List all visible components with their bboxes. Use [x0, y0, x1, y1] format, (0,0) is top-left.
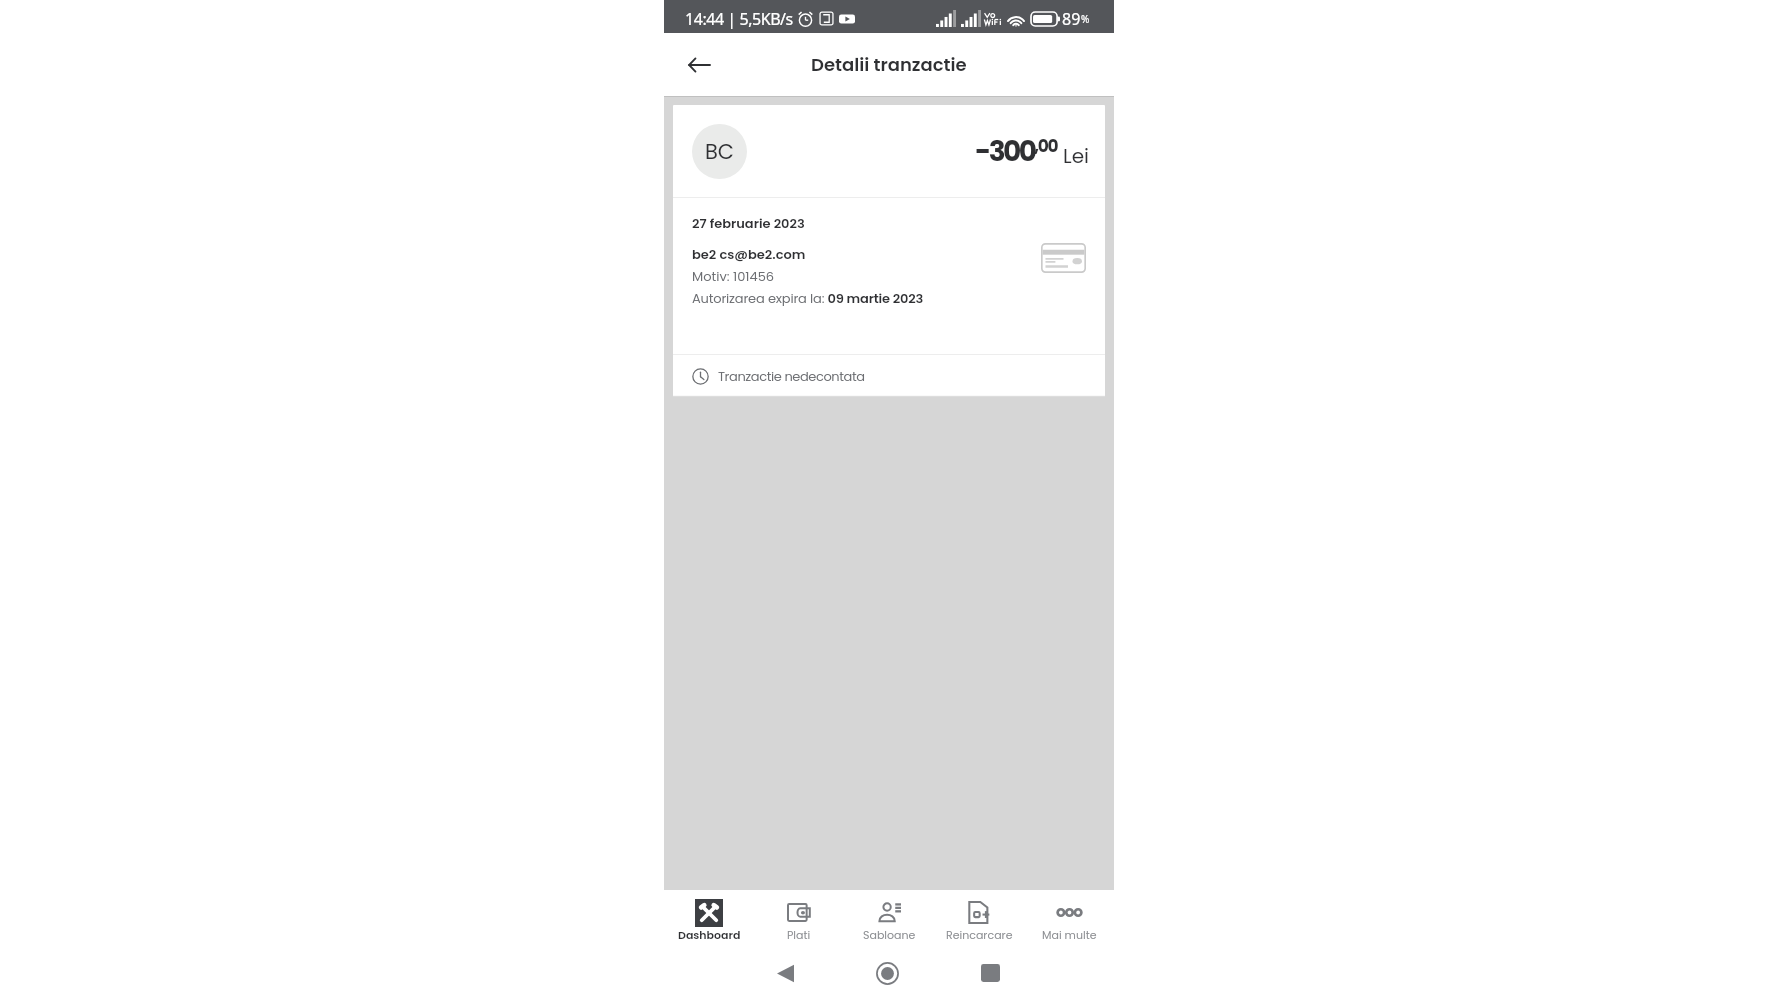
staticText: BC [705, 137, 735, 166]
button[interactable]: Plati [754, 890, 844, 950]
staticText: -300,00 [975, 132, 1058, 171]
staticText: Motiv: 101456 [692, 267, 775, 285]
staticText: 89 [1062, 8, 1081, 30]
staticText: Lei [1063, 142, 1089, 170]
staticText: Detalii tranzactie [811, 52, 967, 77]
staticText: Sabloane [863, 927, 916, 942]
button[interactable]: Home [867, 953, 907, 993]
staticText: be2 cs@be2.com [692, 245, 806, 263]
staticText: Dashboard [678, 927, 741, 942]
staticText: Plati [787, 927, 811, 942]
button[interactable]: Back [680, 46, 718, 84]
button[interactable]: Sabloane [844, 890, 934, 950]
staticText: Mai multe [1042, 927, 1097, 942]
staticText: 14:44 | 5,5KB/s [685, 8, 793, 30]
button[interactable]: Mai multe [1024, 890, 1114, 950]
button[interactable]: Dashboard [664, 890, 754, 950]
staticText: Tranzactie nedecontata [718, 367, 865, 385]
staticText: 27 februarie 2023 [692, 214, 805, 232]
staticText: Autorizarea expira la: 09 martie 2023 [692, 289, 924, 307]
button[interactable]: Back [765, 953, 805, 993]
button[interactable]: Recent apps [970, 953, 1010, 993]
button[interactable]: Tranzactie nedecontata [673, 355, 1105, 397]
staticText: % [1081, 12, 1090, 26]
staticText: Reincarcare [946, 927, 1013, 942]
button[interactable]: Reincarcare [934, 890, 1024, 950]
